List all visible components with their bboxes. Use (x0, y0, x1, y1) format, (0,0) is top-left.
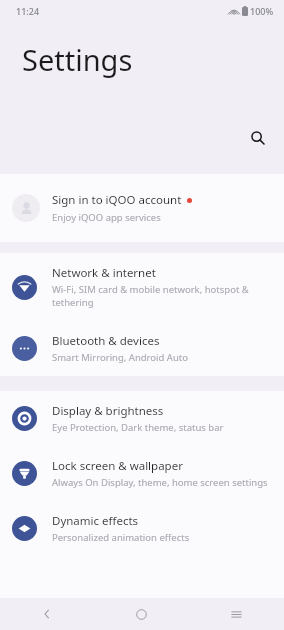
staticText: Dynamic effects (52, 513, 139, 529)
staticText: Enjoy iQOO app services (52, 211, 161, 224)
button[interactable]: Sign in to iQOO account (0, 174, 284, 242)
staticText: Always On Display, theme, home screen se… (52, 476, 268, 489)
button[interactable]: Dynamic effects (0, 501, 284, 556)
button[interactable]: Display & brightness (0, 391, 284, 446)
staticText: Personalized animation effects (52, 531, 190, 544)
staticText: Display & brightness (52, 403, 164, 419)
button[interactable]: Lock screen & wallpaper (0, 446, 284, 501)
staticText: Smart Mirroring, Android Auto (52, 351, 188, 364)
staticText: Bluetooth & devices (52, 333, 160, 349)
staticText: 100% (250, 5, 274, 17)
button[interactable]: Bluetooth & devices (0, 321, 284, 376)
button[interactable]: Search settings (242, 122, 274, 154)
button[interactable]: Network & internet (0, 253, 284, 321)
staticText: Eye Protection, Dark theme, status bar (52, 421, 224, 434)
staticText: Lock screen & wallpaper (52, 458, 183, 474)
staticText: Network & internet (52, 265, 156, 281)
button[interactable]: Back (0, 598, 94, 630)
staticText: Wi-Fi, SIM card & mobile network, hotspo… (52, 283, 268, 309)
staticText: Settings (22, 40, 133, 79)
button[interactable]: Recent apps (189, 598, 284, 630)
staticText: Sign in to iQOO account (52, 192, 182, 208)
staticText: 11:24 (16, 5, 40, 17)
button[interactable]: Home (94, 598, 189, 630)
